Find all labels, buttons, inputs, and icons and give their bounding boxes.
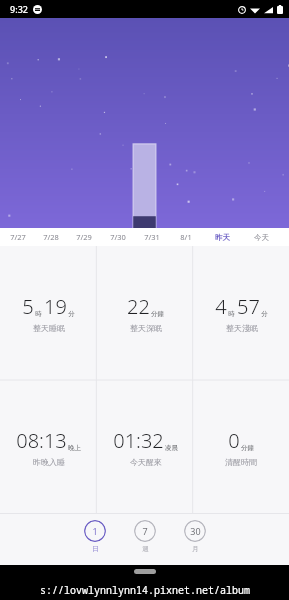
staticText: 日 [92, 545, 99, 553]
staticText: 整天深眠 [130, 323, 162, 333]
button[interactable]: 7/30 [101, 228, 135, 246]
staticText: 5 [22, 293, 34, 320]
button[interactable]: 30 [180, 514, 210, 553]
staticText: 08:13 [16, 427, 67, 454]
staticText: 7/29 [76, 232, 92, 242]
staticText: 19 [44, 293, 67, 320]
staticText: 0 [228, 427, 240, 454]
staticText: 4 [215, 293, 227, 320]
button[interactable]: 08:13 [0, 380, 97, 514]
button[interactable]: 4 [193, 246, 289, 380]
staticText: 分鐘 [241, 444, 254, 452]
staticText: 7/31 [144, 232, 160, 242]
staticText: 昨天 [215, 233, 230, 242]
staticText: 今天 [254, 233, 269, 242]
button[interactable]: 7/31 [135, 228, 169, 246]
button[interactable]: 01:32 [97, 380, 193, 514]
staticText: 分 [261, 310, 268, 318]
staticText: 30 [190, 525, 201, 537]
button[interactable]: 22 [97, 246, 193, 380]
staticText: 7/28 [43, 232, 59, 242]
staticText: 8/1 [180, 232, 192, 242]
button[interactable]: 8/1 [169, 228, 203, 246]
staticText: 7 [142, 525, 148, 537]
staticText: 22 [127, 293, 150, 320]
staticText: 時 [228, 310, 235, 318]
staticText: 01:32 [113, 427, 164, 454]
staticText: 時 [35, 310, 42, 318]
button[interactable]: 7/27 [1, 228, 34, 246]
button[interactable]: 7/29 [67, 228, 101, 246]
staticText: 凌晨 [165, 444, 178, 452]
staticText: 晚上 [68, 444, 81, 452]
button[interactable]: 7/28 [34, 228, 67, 246]
staticText: 9:32 [10, 3, 28, 15]
staticText: 7/27 [10, 232, 26, 242]
button[interactable]: 昨天 [203, 228, 242, 246]
button[interactable]: 0 [193, 380, 289, 514]
staticText: 分 [68, 310, 75, 318]
button[interactable]: 7 [130, 514, 160, 553]
staticText: s://lovwlynnlynn14.pixnet.net/album [40, 583, 250, 597]
button[interactable]: 1 [80, 514, 110, 553]
staticText: 1 [92, 525, 98, 537]
staticText: 分鐘 [151, 310, 164, 318]
button[interactable]: 今天 [242, 228, 281, 246]
staticText: 今天醒來 [130, 457, 162, 467]
staticText: 清醒時間 [225, 457, 257, 467]
staticText: 週 [142, 545, 149, 553]
staticText: 7/30 [110, 232, 126, 242]
staticText: 整天淺眠 [226, 323, 258, 333]
staticText: 昨晚入睡 [33, 457, 65, 467]
button[interactable]: 5 [0, 246, 97, 380]
staticText: 月 [192, 545, 199, 553]
staticText: 57 [237, 293, 260, 320]
staticText: 整天睡眠 [33, 323, 65, 333]
